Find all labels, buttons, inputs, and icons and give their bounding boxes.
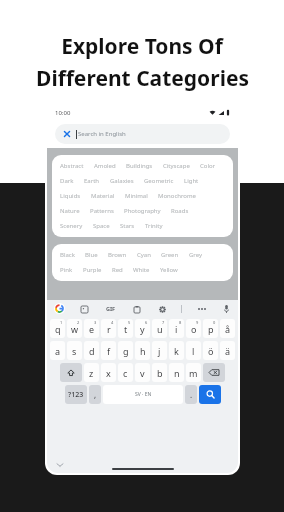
- button[interactable]: Geometric: [141, 175, 177, 187]
- button[interactable]: c: [118, 363, 133, 382]
- button[interactable]: f: [101, 341, 116, 360]
- button[interactable]: k: [169, 341, 184, 360]
- staticText: GIF: [106, 305, 116, 312]
- button[interactable]: Stars: [117, 220, 138, 232]
- button[interactable]: n: [169, 363, 184, 382]
- staticText: Brown: [108, 251, 127, 259]
- button[interactable]: o: [186, 319, 201, 338]
- button[interactable]: Light: [181, 175, 202, 187]
- button[interactable]: Search: [199, 385, 221, 404]
- staticText: 9: [196, 320, 199, 325]
- staticText: Red: [112, 266, 123, 274]
- button[interactable]: Clear: [55, 124, 230, 144]
- button[interactable]: Cyan: [134, 249, 154, 261]
- button[interactable]: Scenery: [57, 220, 86, 232]
- button[interactable]: White: [130, 264, 153, 276]
- button[interactable]: Minimal: [122, 190, 151, 202]
- button[interactable]: Nature: [57, 205, 83, 217]
- button[interactable]: Settings: [157, 304, 167, 314]
- button[interactable]: Google: [54, 303, 65, 314]
- button[interactable]: More options: [197, 304, 207, 314]
- button[interactable]: Red: [109, 264, 126, 276]
- button[interactable]: Hide keyboard: [55, 460, 64, 469]
- button[interactable]: Earth: [81, 175, 103, 187]
- button[interactable]: g: [118, 341, 133, 360]
- button[interactable]: y: [135, 319, 150, 338]
- button[interactable]: Green: [158, 249, 182, 261]
- button[interactable]: Amoled: [91, 160, 119, 172]
- button[interactable]: Yellow: [157, 264, 181, 276]
- button[interactable]: q: [50, 319, 65, 338]
- button[interactable]: Monochrome: [155, 190, 199, 202]
- button[interactable]: ?123: [65, 385, 87, 404]
- button[interactable]: Abstract: [57, 160, 87, 172]
- button[interactable]: SV · EN: [103, 385, 183, 404]
- button[interactable]: ,: [89, 385, 101, 404]
- button[interactable]: Roads: [168, 205, 192, 217]
- button[interactable]: Material: [88, 190, 118, 202]
- button[interactable]: s: [67, 341, 82, 360]
- button[interactable]: Photography: [121, 205, 164, 217]
- button[interactable]: a: [50, 341, 65, 360]
- other: Clear: [63, 130, 71, 138]
- button[interactable]: j: [152, 341, 167, 360]
- staticText: 1: [60, 320, 63, 325]
- staticText: Purple: [83, 266, 102, 274]
- button[interactable]: Trinity: [142, 220, 166, 232]
- button[interactable]: GIF: [104, 303, 118, 314]
- staticText: Light: [184, 177, 199, 185]
- staticText: s: [72, 345, 77, 357]
- button[interactable]: Backspace: [203, 363, 225, 382]
- button[interactable]: Color: [197, 160, 219, 172]
- staticText: ö: [208, 345, 214, 357]
- staticText: Green: [161, 251, 179, 259]
- button[interactable]: e: [84, 319, 99, 338]
- button[interactable]: p: [203, 319, 218, 338]
- staticText: .: [190, 389, 193, 400]
- button[interactable]: u: [152, 319, 167, 338]
- button[interactable]: Galaxies: [107, 175, 137, 187]
- staticText: 5: [128, 320, 131, 325]
- button[interactable]: i: [169, 319, 184, 338]
- button[interactable]: b: [152, 363, 167, 382]
- button[interactable]: Patterns: [87, 205, 117, 217]
- staticText: Abstract: [60, 162, 84, 170]
- button[interactable]: Buildings: [123, 160, 156, 172]
- button[interactable]: t: [118, 319, 133, 338]
- button[interactable]: h: [135, 341, 150, 360]
- button[interactable]: Cityscape: [160, 160, 193, 172]
- button[interactable]: d: [84, 341, 99, 360]
- button[interactable]: Stickers: [79, 304, 89, 314]
- other: Shift: [60, 363, 82, 382]
- button[interactable]: v: [135, 363, 150, 382]
- button[interactable]: ä: [220, 341, 235, 360]
- staticText: White: [133, 266, 150, 274]
- button[interactable]: x: [101, 363, 116, 382]
- staticText: k: [174, 345, 179, 357]
- button[interactable]: Shift: [60, 363, 82, 382]
- button[interactable]: Pink: [57, 264, 76, 276]
- button[interactable]: z: [84, 363, 99, 382]
- button[interactable]: l: [186, 341, 201, 360]
- button[interactable]: Brown: [105, 249, 130, 261]
- button[interactable]: ö: [203, 341, 218, 360]
- button[interactable]: w: [67, 319, 82, 338]
- button[interactable]: å: [220, 319, 235, 338]
- staticText: l: [192, 345, 195, 357]
- button[interactable]: Purple: [80, 264, 105, 276]
- staticText: Trinity: [145, 222, 163, 230]
- button[interactable]: Blue: [82, 249, 101, 261]
- button[interactable]: Black: [57, 249, 78, 261]
- button[interactable]: Grey: [186, 249, 206, 261]
- button[interactable]: Voice input: [221, 304, 231, 314]
- button[interactable]: r: [101, 319, 116, 338]
- staticText: b: [157, 367, 163, 379]
- button[interactable]: Liquids: [57, 190, 84, 202]
- staticText: 6: [145, 320, 148, 325]
- button[interactable]: Space: [90, 220, 113, 232]
- button[interactable]: Dark: [57, 175, 77, 187]
- button[interactable]: Clipboard: [132, 304, 142, 314]
- button[interactable]: m: [186, 363, 201, 382]
- staticText: Liquids: [60, 192, 81, 200]
- button[interactable]: .: [185, 385, 197, 404]
